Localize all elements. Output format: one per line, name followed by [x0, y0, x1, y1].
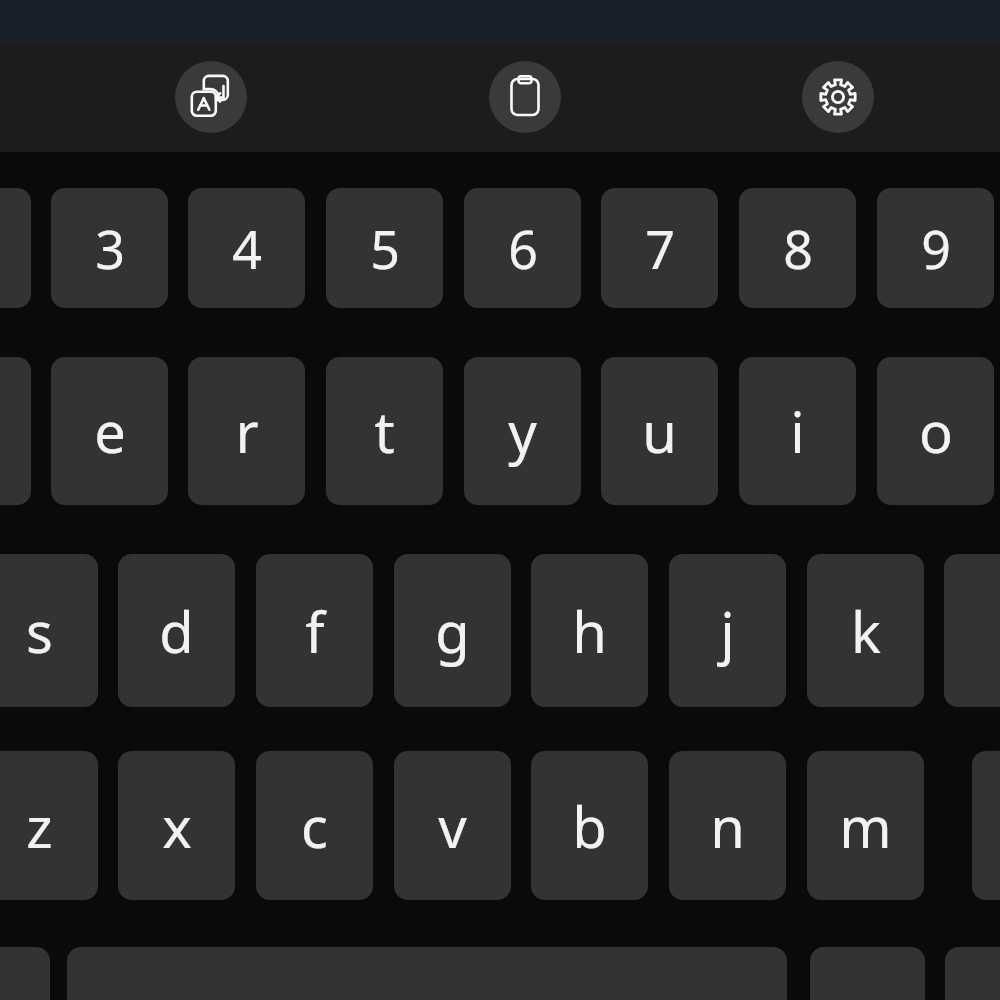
- button[interactable]: Clipboard: [489, 61, 561, 133]
- button[interactable]: e: [51, 357, 168, 505]
- button[interactable]: s: [0, 554, 98, 707]
- button[interactable]: n: [669, 751, 786, 900]
- button[interactable]: k: [807, 554, 924, 707]
- staticText: d: [159, 593, 194, 669]
- button[interactable]: m: [807, 751, 924, 900]
- button[interactable]: 2: [0, 188, 31, 308]
- button[interactable]: 3: [51, 188, 168, 308]
- staticText: 3: [95, 213, 125, 284]
- button[interactable]: u: [601, 357, 718, 505]
- staticText: x: [162, 788, 192, 864]
- button[interactable]: Backspace: [972, 751, 1000, 900]
- button[interactable]: c: [256, 751, 373, 900]
- staticText: 4: [232, 213, 262, 284]
- staticText: 7: [645, 213, 675, 284]
- button[interactable]: 7: [601, 188, 718, 308]
- button[interactable]: 9: [877, 188, 994, 308]
- button[interactable]: d: [118, 554, 235, 707]
- staticText: 8: [783, 213, 813, 284]
- button[interactable]: j: [669, 554, 786, 707]
- button[interactable]: t: [326, 357, 443, 505]
- staticText: k: [851, 593, 881, 669]
- staticText: 6: [508, 213, 538, 284]
- staticText: r: [235, 393, 259, 469]
- button[interactable]: Enter: [945, 947, 1000, 1000]
- button[interactable]: l: [944, 554, 1000, 707]
- staticText: h: [572, 593, 607, 669]
- staticText: o: [919, 393, 953, 469]
- button[interactable]: Settings: [802, 61, 874, 133]
- staticText: c: [301, 788, 328, 864]
- button[interactable]: f: [256, 554, 373, 707]
- staticText: y: [508, 393, 537, 469]
- staticText: m: [839, 788, 892, 864]
- button[interactable]: 5: [326, 188, 443, 308]
- staticText: 5: [370, 213, 400, 284]
- staticText: 9: [921, 213, 951, 284]
- staticText: j: [720, 593, 735, 669]
- button[interactable]: r: [188, 357, 305, 505]
- staticText: z: [26, 788, 53, 864]
- button[interactable]: g: [394, 554, 511, 707]
- button[interactable]: y: [464, 357, 581, 505]
- button[interactable]: Period: [810, 947, 925, 1000]
- button[interactable]: i: [739, 357, 856, 505]
- staticText: b: [572, 788, 607, 864]
- button[interactable]: v: [394, 751, 511, 900]
- button[interactable]: w: [0, 357, 31, 505]
- button[interactable]: z: [0, 751, 98, 900]
- staticText: f: [305, 593, 325, 669]
- button[interactable]: 6: [464, 188, 581, 308]
- staticText: e: [94, 393, 126, 469]
- button[interactable]: 4: [188, 188, 305, 308]
- staticText: v: [438, 788, 467, 864]
- button[interactable]: o: [877, 357, 994, 505]
- staticText: u: [642, 393, 677, 469]
- button[interactable]: Symbols: [0, 947, 50, 1000]
- staticText: t: [374, 393, 395, 469]
- button[interactable]: 8: [739, 188, 856, 308]
- staticText: n: [710, 788, 745, 864]
- button[interactable]: Translate: [175, 61, 247, 133]
- button[interactable]: x: [118, 751, 235, 900]
- staticText: i: [790, 393, 805, 469]
- button[interactable]: b: [531, 751, 648, 900]
- staticText: g: [435, 593, 470, 669]
- button[interactable]: h: [531, 554, 648, 707]
- staticText: s: [26, 593, 53, 669]
